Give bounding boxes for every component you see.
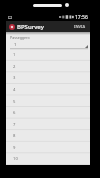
staticText: 1: [14, 42, 17, 48]
button[interactable]: 2: [6, 61, 90, 72]
other: Open dropdown: [85, 45, 88, 48]
button[interactable]: 6: [6, 107, 90, 118]
button[interactable]: 9: [6, 142, 90, 153]
button[interactable]: 1: [6, 49, 90, 60]
staticText: 9: [13, 145, 16, 151]
button[interactable]: 8: [6, 130, 90, 141]
staticText: 5: [13, 99, 16, 105]
button[interactable]: 3: [6, 72, 90, 83]
staticText: 10: [13, 156, 18, 162]
button[interactable]: 10: [6, 153, 90, 164]
button[interactable]: BPSurvey app icon: [9, 24, 15, 30]
staticText: 8: [13, 133, 16, 139]
staticText: 6: [13, 110, 16, 116]
staticText: INVIA: [74, 24, 86, 29]
staticText: 2: [13, 64, 16, 70]
staticText: 1: [13, 52, 16, 58]
button[interactable]: 7: [6, 119, 90, 130]
staticText: 4: [13, 87, 16, 93]
button[interactable]: 5: [6, 96, 90, 107]
staticText: 3: [13, 75, 16, 81]
staticText: 7: [13, 122, 16, 128]
staticText: Passeggero: [10, 35, 30, 40]
staticText: 17:56: [75, 14, 88, 21]
button[interactable]: 4: [6, 84, 90, 95]
button[interactable]: INVIA: [72, 21, 88, 32]
staticText: BPSurvey: [17, 23, 44, 31]
button[interactable]: Passeggero: [6, 32, 90, 49]
